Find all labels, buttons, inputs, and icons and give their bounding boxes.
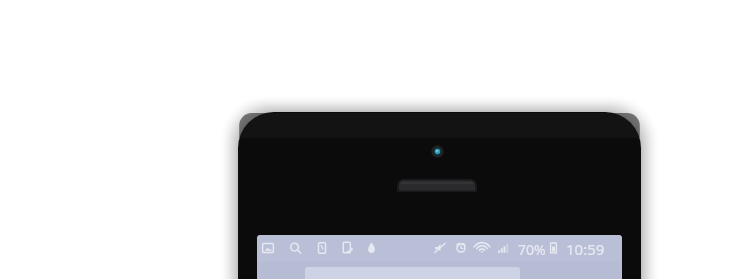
- staticText: 70%: [518, 240, 546, 259]
- staticText: 10:59: [566, 239, 605, 259]
- button[interactable]: Status bar: [257, 235, 622, 262]
